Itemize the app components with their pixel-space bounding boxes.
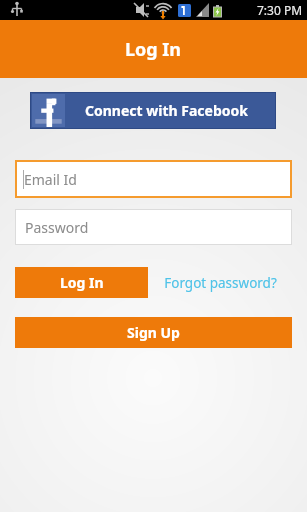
- staticText: Sign Up: [127, 323, 180, 342]
- button[interactable]: Log In: [15, 267, 148, 298]
- button[interactable]: Password: [15, 209, 292, 245]
- button[interactable]: Connect with Facebook: [30, 92, 276, 129]
- staticText: Email Id: [24, 170, 77, 189]
- staticText: Log In: [125, 37, 182, 62]
- staticText: Password: [25, 218, 89, 237]
- staticText: Log In: [60, 273, 104, 292]
- button[interactable]: Forgot password?: [148, 267, 292, 298]
- staticText: 7:30 PM: [257, 2, 303, 18]
- staticText: Connect with Facebook: [85, 101, 248, 120]
- staticText: Forgot password?: [164, 274, 277, 292]
- button[interactable]: Sign Up: [15, 317, 292, 348]
- button[interactable]: Email Id: [15, 160, 292, 198]
